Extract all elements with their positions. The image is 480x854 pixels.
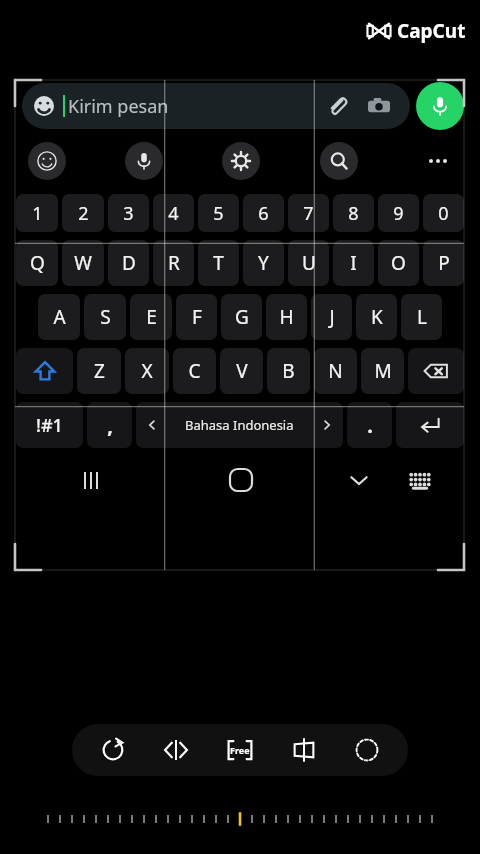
staticText: N [328, 358, 343, 384]
staticText: Free [230, 744, 250, 756]
staticText: I [350, 250, 357, 276]
button[interactable]: Home [166, 456, 315, 504]
staticText: Bahasa Indonesia [185, 416, 294, 434]
button[interactable]: 8 [333, 194, 374, 232]
staticText: S [100, 304, 111, 330]
button[interactable]: B [267, 348, 310, 394]
button[interactable]: 1 [16, 194, 58, 232]
button[interactable]: Switch keyboard [402, 462, 438, 498]
staticText: A [53, 304, 66, 330]
button[interactable]: Bahasa Indonesia [136, 402, 343, 448]
button[interactable]: Recents [16, 456, 166, 504]
button[interactable]: T [198, 240, 239, 286]
staticText: D [122, 250, 136, 276]
button[interactable]: 5 [198, 194, 239, 232]
button[interactable]: Stickers [28, 142, 66, 180]
button[interactable]: Camera [364, 91, 394, 121]
button[interactable]: Reset rotation [90, 727, 136, 773]
staticText: 3 [123, 201, 134, 226]
staticText: , [107, 412, 113, 439]
button[interactable]: C [173, 348, 216, 394]
button[interactable]: X [125, 348, 169, 394]
button[interactable]: Q [16, 240, 58, 286]
staticText: Z [94, 358, 105, 384]
button[interactable]: Flip [153, 727, 199, 773]
button[interactable]: More options [418, 141, 458, 181]
staticText: E [146, 304, 157, 330]
button[interactable]: !#1 [16, 402, 83, 448]
staticText: 5 [213, 201, 224, 226]
button[interactable]: , [87, 402, 132, 448]
staticText: CapCut [397, 18, 466, 44]
staticText: V [236, 358, 248, 384]
button[interactable]: Settings [222, 142, 260, 180]
button[interactable]: E [130, 294, 172, 340]
button[interactable]: R [153, 240, 194, 286]
staticText: M [374, 358, 392, 384]
staticText: !#1 [36, 413, 63, 438]
staticText: 6 [258, 201, 269, 226]
staticText: 2 [78, 201, 89, 226]
button[interactable]: W [62, 240, 104, 286]
button[interactable]: N [314, 348, 357, 394]
button[interactable]: J [311, 294, 352, 340]
button[interactable]: Voice input [125, 142, 163, 180]
staticText: L [417, 304, 427, 330]
staticText: W [74, 250, 92, 276]
staticText: Q [30, 250, 45, 276]
button[interactable]: Mask [344, 727, 390, 773]
staticText: T [213, 250, 224, 276]
button[interactable]: 0 [423, 194, 464, 232]
button[interactable]: Voice message [416, 82, 464, 130]
button[interactable]: Mirror [281, 727, 327, 773]
button[interactable]: 9 [378, 194, 419, 232]
staticText: K [371, 304, 383, 330]
staticText: P [438, 250, 450, 276]
button[interactable]: Hide keyboard [341, 462, 377, 498]
button[interactable]: H [266, 294, 307, 340]
button[interactable]: Y [243, 240, 284, 286]
staticText: O [391, 250, 406, 276]
button[interactable]: P [423, 240, 464, 286]
staticText: Kirim pesan [68, 94, 169, 119]
button[interactable]: 4 [153, 194, 194, 232]
staticText: Y [258, 250, 269, 276]
button[interactable]: M [361, 348, 404, 394]
button[interactable]: S [84, 294, 126, 340]
button[interactable]: Kirim pesan [22, 83, 410, 129]
button[interactable]: L [401, 294, 442, 340]
button[interactable]: 3 [108, 194, 149, 232]
button[interactable]: Free ratio [217, 727, 263, 773]
staticText: 9 [393, 201, 404, 226]
button[interactable]: V [220, 348, 263, 394]
button[interactable]: K [356, 294, 397, 340]
button[interactable]: O [378, 240, 419, 286]
staticText: H [279, 304, 294, 330]
button[interactable]: Shift [16, 348, 73, 394]
button[interactable]: D [108, 240, 149, 286]
button[interactable]: Z [77, 348, 121, 394]
staticText: 1 [32, 201, 43, 226]
button[interactable]: I [333, 240, 374, 286]
button[interactable]: Search [320, 142, 358, 180]
button[interactable]: 7 [288, 194, 329, 232]
button[interactable]: A [38, 294, 80, 340]
button[interactable]: F [176, 294, 217, 340]
button[interactable]: Backspace [408, 348, 464, 394]
button[interactable]: Attach [322, 91, 352, 121]
staticText: R [168, 250, 180, 276]
button[interactable]: . [347, 402, 392, 448]
staticText: U [302, 250, 316, 276]
staticText: 4 [168, 201, 179, 226]
button[interactable]: G [221, 294, 262, 340]
staticText: G [235, 304, 249, 330]
button[interactable]: 6 [243, 194, 284, 232]
button[interactable]: Enter [396, 402, 464, 448]
staticText: X [141, 358, 153, 384]
button[interactable]: U [288, 240, 329, 286]
staticText: 7 [303, 201, 314, 226]
staticText: 0 [438, 201, 449, 226]
button[interactable]: 2 [62, 194, 104, 232]
staticText: 8 [348, 201, 359, 226]
staticText: B [282, 358, 295, 384]
